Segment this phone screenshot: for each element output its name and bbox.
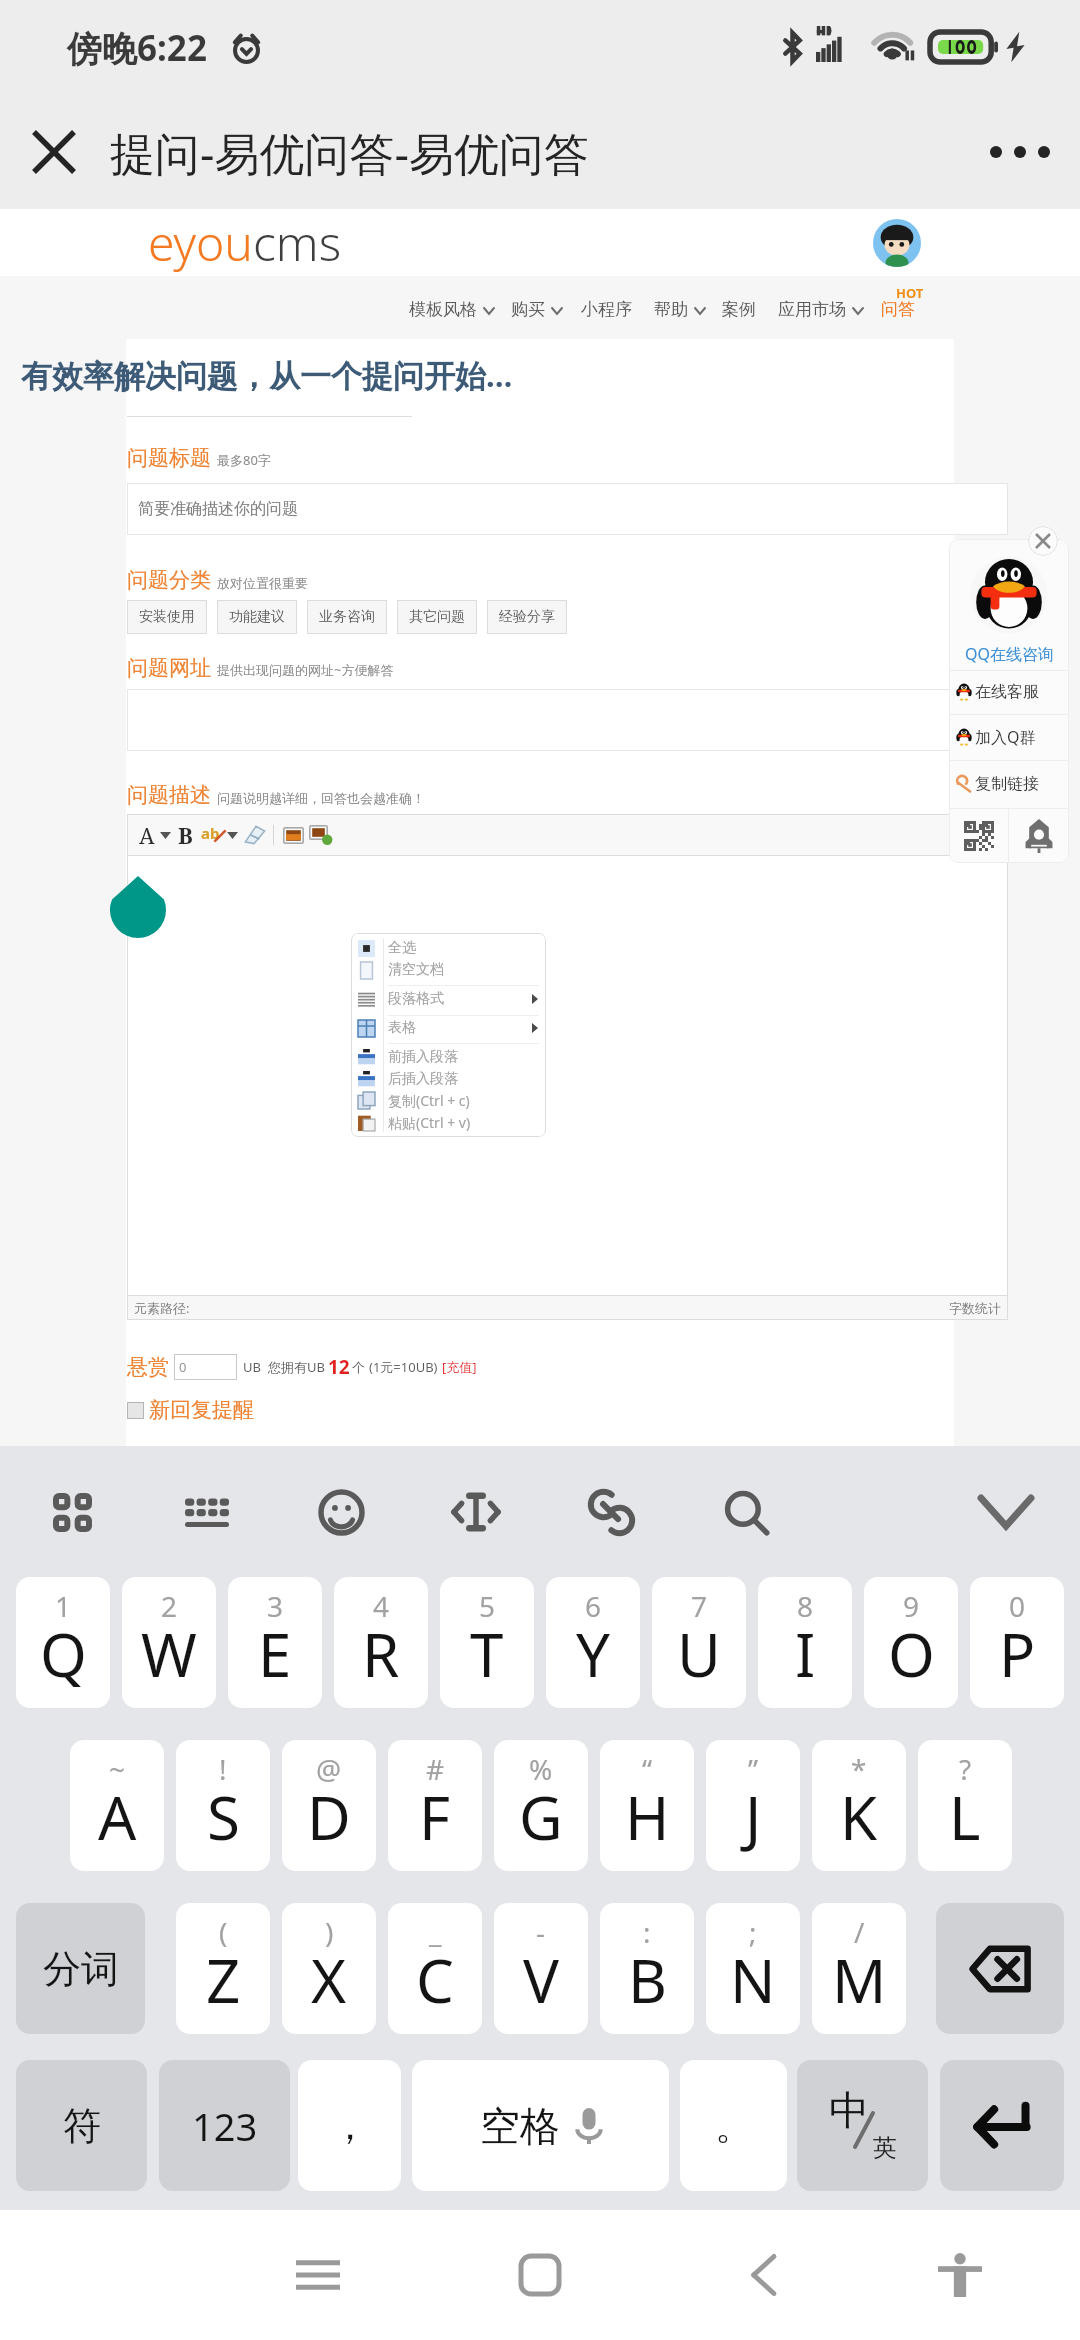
button[interactable]: Back to top — [1009, 809, 1069, 863]
button[interactable]: 1 — [16, 1577, 110, 1708]
staticText: 简要准确描述你的问题 — [138, 499, 298, 519]
button[interactable]: 9 — [864, 1577, 958, 1708]
staticText: A — [139, 820, 155, 850]
button[interactable]: link — [556, 1457, 666, 1567]
button[interactable]: Hide keyboard — [951, 1457, 1061, 1567]
button[interactable]: * — [812, 1740, 906, 1871]
button[interactable]: 复制(Ctrl + c) — [351, 1089, 546, 1111]
button[interactable]: ~ — [70, 1740, 164, 1871]
button[interactable]: grid — [17, 1457, 127, 1567]
button[interactable]: : — [600, 1903, 694, 2034]
button[interactable]: Recents — [263, 2210, 373, 2340]
button[interactable]: 安装使用 — [127, 600, 207, 634]
button[interactable]: 中 — [797, 2060, 928, 2191]
button[interactable]: 模板风格 — [409, 293, 494, 325]
staticText: G — [519, 1776, 563, 1858]
button[interactable]: Accessibility — [905, 2210, 1015, 2340]
staticText: 问题描述 — [127, 782, 211, 808]
button[interactable]: 表格 — [351, 1017, 546, 1039]
button[interactable]: 应用市场 — [778, 293, 863, 325]
button[interactable]: 0 — [970, 1577, 1064, 1708]
button[interactable]: ? — [918, 1740, 1012, 1871]
staticText: V — [523, 1939, 559, 2021]
staticText: # — [426, 1750, 445, 1788]
button[interactable]: Home — [485, 2210, 595, 2340]
button[interactable]: ” — [706, 1740, 800, 1871]
staticText: B — [178, 820, 193, 850]
button[interactable]: emoji — [286, 1457, 396, 1567]
button[interactable]: 购买 — [511, 293, 562, 325]
staticText: 全选 — [388, 939, 416, 957]
staticText: cms — [253, 210, 342, 275]
button[interactable]: 小程序 — [581, 293, 632, 325]
button[interactable]: ; — [706, 1903, 800, 2034]
button[interactable]: 新回复提醒 — [127, 1397, 254, 1423]
button[interactable]: Close — [8, 106, 100, 198]
button[interactable]: % — [494, 1740, 588, 1871]
button[interactable]: ! — [176, 1740, 270, 1871]
button[interactable]: 问答 — [876, 293, 920, 325]
button[interactable]: “ — [600, 1740, 694, 1871]
staticText: 您拥有UB — [268, 1358, 325, 1376]
staticText: (1元=10UB) — [369, 1358, 438, 1376]
button[interactable]: 粘贴(Ctrl + v) — [351, 1111, 546, 1133]
button[interactable]: # — [388, 1740, 482, 1871]
button[interactable]: 3 — [228, 1577, 322, 1708]
button[interactable]: Backspace — [936, 1903, 1064, 2034]
button[interactable]: Account — [873, 219, 921, 267]
button[interactable]: kb — [152, 1457, 262, 1567]
button[interactable]: 业务咨询 — [307, 600, 387, 634]
button[interactable]: 复制链接 — [949, 760, 1069, 808]
button[interactable]: 清空文档 — [351, 959, 546, 981]
button[interactable]: 后插入段落 — [351, 1068, 546, 1090]
button[interactable]: 经验分享 — [487, 600, 567, 634]
button[interactable]: 案例 — [722, 293, 756, 325]
button[interactable]: @ — [282, 1740, 376, 1871]
button[interactable]: 分词 — [16, 1903, 145, 2034]
button[interactable]: 加入Q群 — [949, 714, 1069, 760]
button[interactable]: ) — [282, 1903, 376, 2034]
staticText: @ — [316, 1750, 342, 1788]
button[interactable]: 符 — [16, 2060, 147, 2191]
button[interactable]: _ — [388, 1903, 482, 2034]
button[interactable]: 其它问题 — [397, 600, 477, 634]
button[interactable]: 功能建议 — [217, 600, 297, 634]
button[interactable]: 在线客服 — [949, 670, 1069, 714]
staticText: 功能建议 — [229, 608, 285, 626]
button[interactable]: 6 — [546, 1577, 640, 1708]
button[interactable]: Close panel — [1028, 526, 1058, 556]
button[interactable]: 帮助 — [654, 293, 705, 325]
button[interactable]: More options — [970, 102, 1070, 202]
staticText: “ — [642, 1750, 653, 1788]
button[interactable]: - — [494, 1903, 588, 2034]
button[interactable]: 123 — [159, 2060, 290, 2191]
button[interactable]: cursor — [421, 1457, 531, 1567]
button[interactable]: 。 — [680, 2060, 787, 2191]
staticText: 中 — [829, 2085, 869, 2135]
staticText: 4 — [373, 1587, 390, 1625]
staticText: - — [536, 1913, 546, 1951]
button[interactable]: 8 — [758, 1577, 852, 1708]
button[interactable]: QR code — [949, 809, 1008, 863]
button[interactable]: 段落格式 — [351, 988, 546, 1010]
button[interactable]: 2 — [122, 1577, 216, 1708]
staticText: 个 — [352, 1359, 365, 1375]
button[interactable]: 全选 — [351, 937, 546, 959]
button[interactable]: 7 — [652, 1577, 746, 1708]
staticText: U — [677, 1613, 721, 1695]
button[interactable]: Back — [711, 2210, 821, 2340]
button[interactable]: search — [691, 1457, 801, 1567]
button[interactable]: 5 — [440, 1577, 534, 1708]
staticText: 傍晚6:22 — [67, 24, 207, 72]
button[interactable]: 4 — [334, 1577, 428, 1708]
button[interactable]: Enter — [940, 2060, 1064, 2191]
staticText: 。 — [715, 2102, 753, 2150]
button[interactable]: ， — [298, 2060, 401, 2191]
staticText: 12 — [328, 1354, 350, 1380]
staticText: ~ — [109, 1750, 126, 1788]
button[interactable]: ( — [176, 1903, 270, 2034]
button[interactable]: 空格 — [412, 2060, 669, 2191]
button[interactable]: 前插入段落 — [351, 1046, 546, 1068]
button[interactable]: / — [812, 1903, 906, 2034]
staticText: % — [529, 1750, 553, 1788]
